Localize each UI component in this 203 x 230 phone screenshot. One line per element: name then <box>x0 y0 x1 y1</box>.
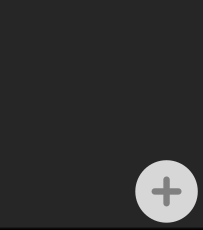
button[interactable]: Add <box>135 160 198 223</box>
